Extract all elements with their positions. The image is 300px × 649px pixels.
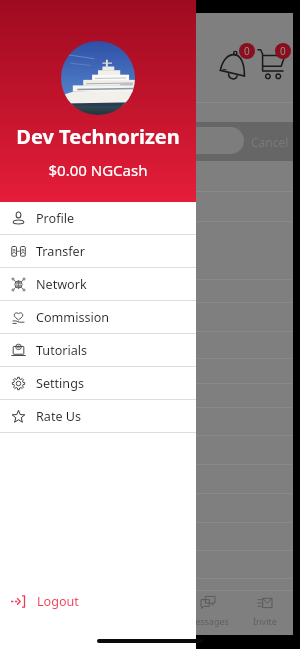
button[interactable]: Cart [255,46,295,86]
button[interactable]: Messages [179,591,236,635]
staticText: Network [36,276,87,293]
button[interactable] [6,591,64,635]
staticText: Dev Technorizen [0,123,196,150]
button[interactable]: Settings [0,367,196,399]
button[interactable]: Profile [0,202,196,234]
staticText: $0.00 NGCash [0,160,196,180]
staticText: Commission [36,309,110,326]
button[interactable] [64,591,122,635]
staticText: Profile [36,210,75,227]
staticText: Cancel [251,134,289,150]
button[interactable]: Network [0,268,196,300]
staticText: Invite [253,615,277,627]
staticText: Logout [37,593,79,610]
staticText: Rate Us [36,408,82,425]
staticText: Settings [36,375,84,392]
staticText: Tutorials [36,342,88,359]
staticText: Messages [187,615,229,627]
staticText: 0 [280,44,286,58]
button[interactable]: Tutorials [0,334,196,366]
staticText: Search Users [0,133,54,149]
button[interactable]: Logout [0,585,196,617]
staticText: Transfer [36,243,85,260]
staticText: 0 [244,44,250,58]
button[interactable]: Commission [0,301,196,333]
button[interactable]: Search Users [0,127,244,154]
button[interactable]: Transfer [0,235,196,267]
button[interactable]: Rate Us [0,400,196,432]
button[interactable]: Notifications [216,46,256,86]
button[interactable]: Cancel [251,134,289,150]
button[interactable]: Invite [236,591,293,635]
